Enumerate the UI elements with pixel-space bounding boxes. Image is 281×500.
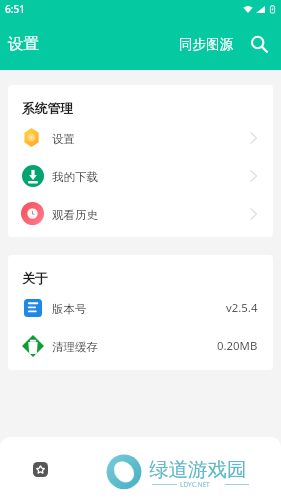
staticText: 关于 xyxy=(22,271,48,287)
staticText: 6:51 xyxy=(5,2,25,16)
staticText: 观看历史 xyxy=(52,208,98,222)
button[interactable]: 同步图源 xyxy=(178,24,234,65)
button[interactable]: 清理缓存 xyxy=(8,326,273,364)
button[interactable]: 观看历史 xyxy=(8,194,273,232)
staticText: v2.5.4 xyxy=(226,300,258,316)
button[interactable]: 我的下载 xyxy=(8,156,273,194)
staticText: LDYC.NET xyxy=(180,480,210,489)
staticText: 清理缓存 xyxy=(52,340,98,354)
button[interactable]: Favorites xyxy=(33,462,48,477)
button[interactable]: Search xyxy=(247,32,271,56)
staticText: 绿道游戏园 xyxy=(149,457,247,482)
button[interactable]: 设置 xyxy=(8,118,273,156)
staticText: 我的下载 xyxy=(52,170,98,184)
staticText: 设置 xyxy=(52,132,75,146)
staticText: 设置 xyxy=(8,34,39,54)
staticText: 系统管理 xyxy=(22,101,74,117)
button[interactable]: 版本号 xyxy=(8,288,273,326)
staticText: 同步图源 xyxy=(179,36,233,53)
staticText: 版本号 xyxy=(52,302,87,316)
staticText: 0.20MB xyxy=(217,338,258,354)
